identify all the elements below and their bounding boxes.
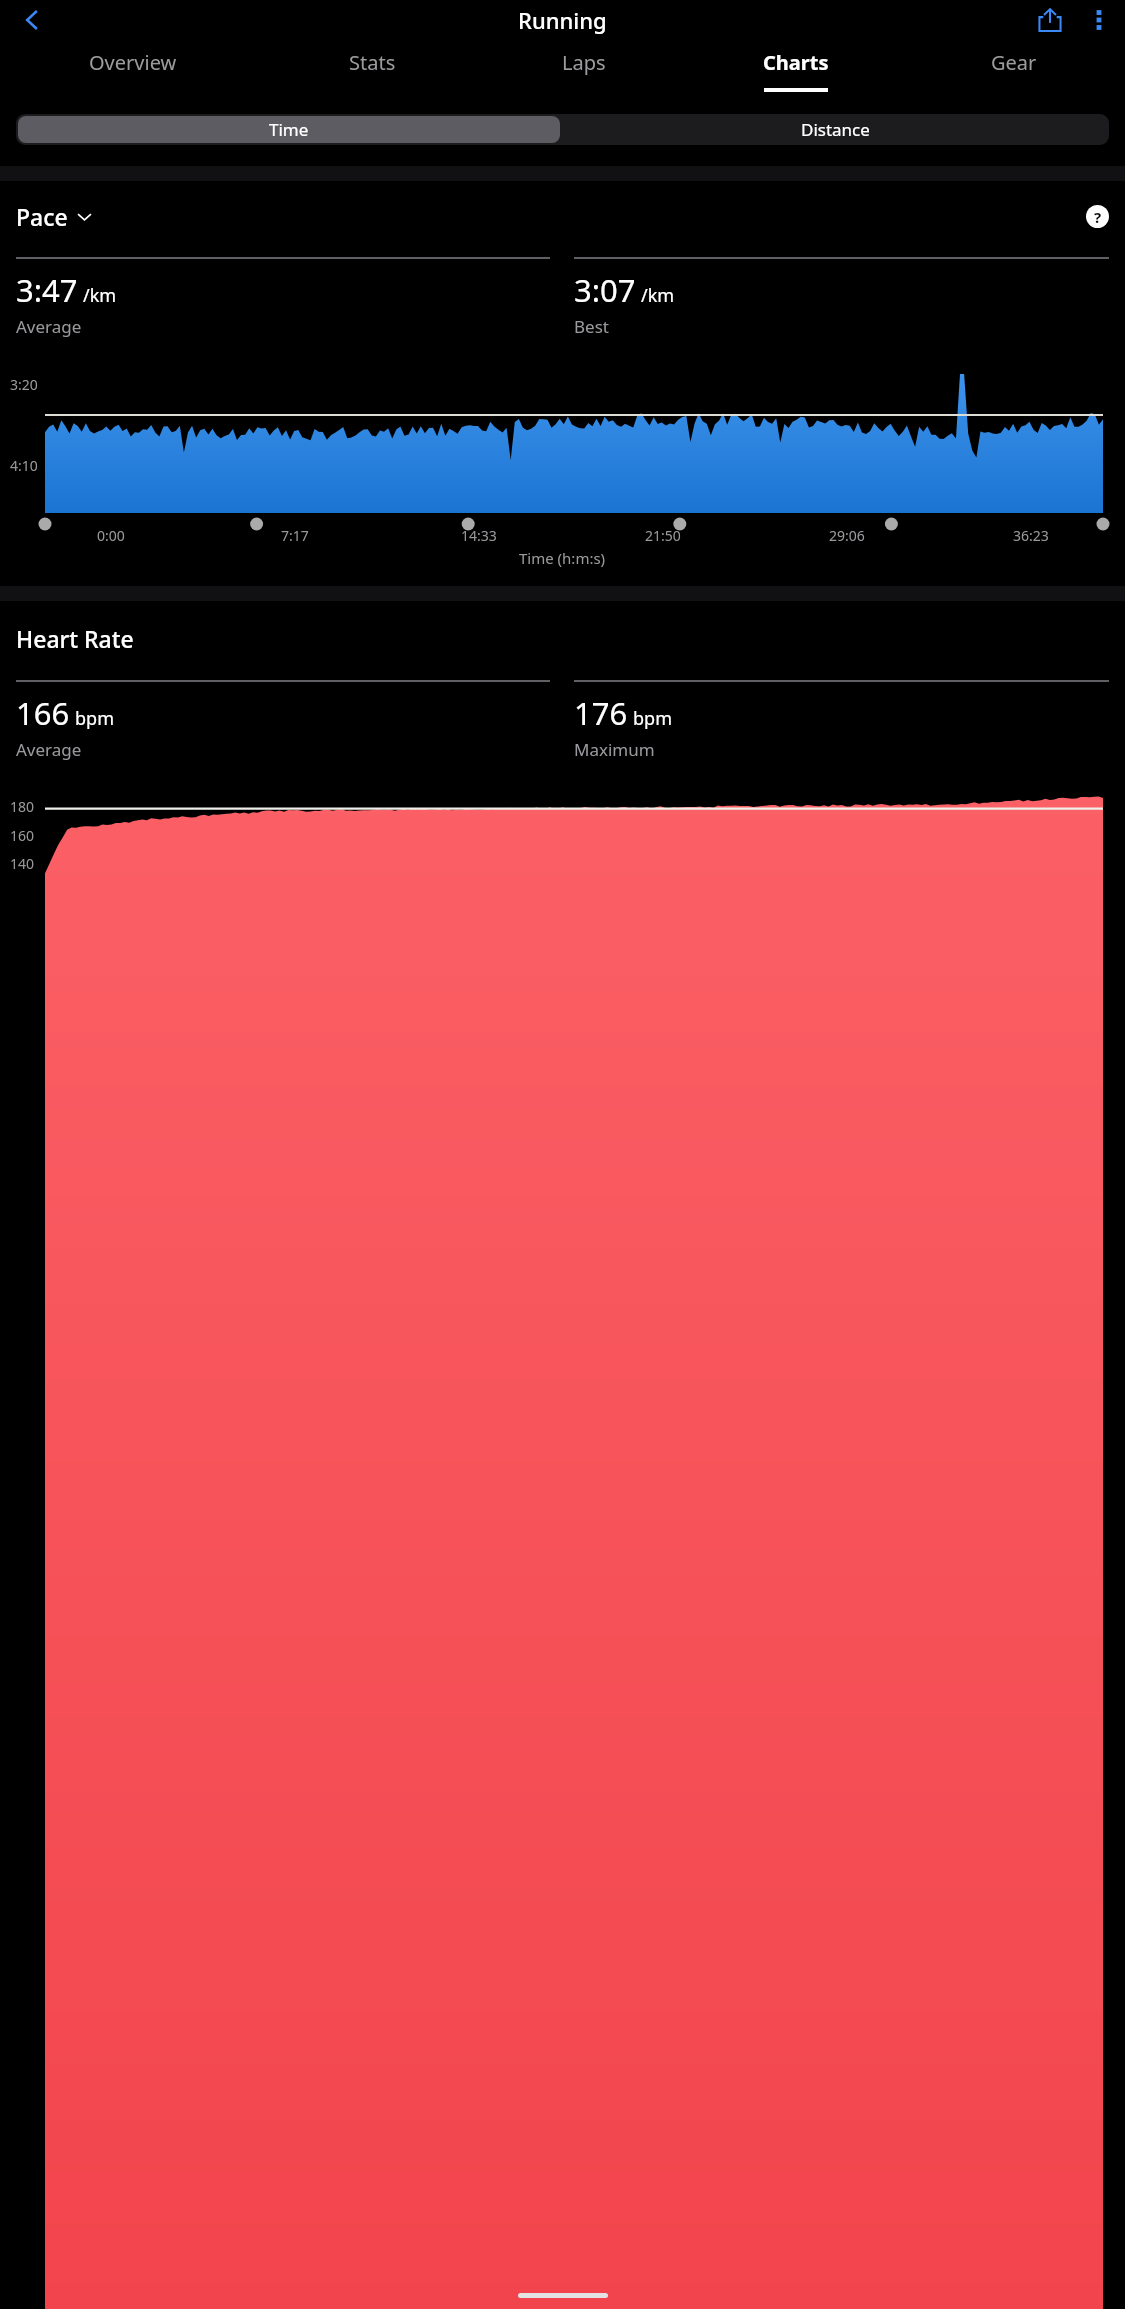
staticText: 29:06 — [829, 526, 865, 545]
staticText: 3:07 — [574, 269, 636, 311]
staticText: Average — [16, 315, 82, 338]
staticText: 36:23 — [1013, 526, 1049, 545]
button[interactable]: Gear — [902, 40, 1125, 100]
button[interactable]: Charts — [690, 40, 902, 100]
button[interactable]: Back — [10, 0, 54, 40]
staticText: 180 — [10, 797, 35, 816]
button[interactable]: Time — [18, 116, 560, 143]
staticText: 3:20 — [10, 375, 38, 394]
staticText: 166 — [16, 692, 70, 734]
staticText: 160 — [10, 826, 35, 845]
staticText: ? — [1094, 207, 1102, 227]
staticText: 3:47 — [16, 269, 78, 311]
staticText: Charts — [763, 49, 829, 76]
staticText: Heart Rate — [16, 623, 134, 654]
button[interactable]: Pace — [16, 201, 93, 232]
staticText: 21:50 — [645, 526, 681, 545]
button[interactable]: Laps — [478, 40, 690, 100]
staticText: Stats — [349, 49, 396, 76]
staticText: Overview — [89, 49, 177, 76]
staticText: Distance — [801, 118, 870, 141]
staticText: 4:10 — [10, 456, 38, 475]
staticText: 7:17 — [281, 526, 309, 545]
staticText: Running — [518, 5, 607, 35]
staticText: /km — [83, 283, 117, 308]
button[interactable]: Distance — [562, 114, 1109, 145]
staticText: Pace — [16, 201, 68, 232]
staticText: 176 — [574, 692, 628, 734]
button[interactable]: More options — [1073, 0, 1125, 40]
staticText: Laps — [562, 49, 606, 76]
staticText: 0:00 — [97, 526, 125, 545]
button[interactable]: Overview — [0, 40, 266, 100]
staticText: bpm — [633, 706, 672, 731]
staticText: 140 — [10, 854, 35, 873]
staticText: Time — [269, 118, 309, 141]
staticText: /km — [641, 283, 675, 308]
staticText: Gear — [991, 49, 1037, 76]
staticText: Maximum — [574, 738, 655, 761]
button[interactable]: Share — [1027, 0, 1073, 40]
button[interactable]: Stats — [266, 40, 478, 100]
staticText: Average — [16, 738, 82, 761]
staticText: bpm — [75, 706, 114, 731]
staticText: Best — [574, 315, 609, 338]
staticText: 14:33 — [461, 526, 497, 545]
button[interactable]: Help — [1086, 205, 1109, 228]
staticText: Time (h:m:s) — [519, 548, 606, 568]
